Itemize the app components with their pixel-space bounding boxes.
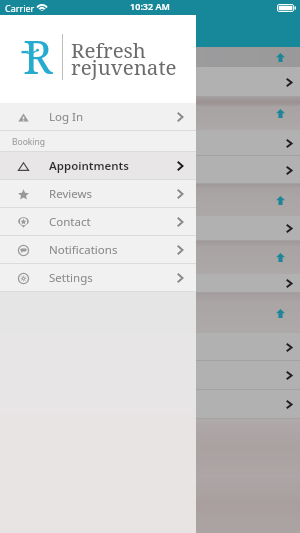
button[interactable]: Open item — [0, 216, 300, 241]
staticText: Reviews — [49, 186, 93, 202]
button[interactable]: Collapse section — [0, 97, 300, 130]
button[interactable]: Open item — [0, 361, 300, 390]
other: Collapse section — [276, 253, 285, 262]
staticText: Settings — [49, 270, 93, 286]
other: Open item — [286, 139, 292, 148]
button[interactable]: Open item — [0, 67, 300, 97]
other: Open item — [286, 279, 292, 288]
other: Open item — [286, 343, 292, 352]
button[interactable]: Open item — [0, 130, 300, 156]
staticText: Refresh — [71, 36, 146, 64]
staticText: Contact — [49, 214, 91, 230]
button[interactable]: Open item — [0, 333, 300, 361]
button[interactable]: Open item — [0, 156, 300, 184]
button[interactable]: Log In — [0, 103, 196, 131]
button[interactable]: Collapse section — [0, 241, 300, 274]
other: Collapse section — [276, 196, 285, 205]
button[interactable]: Settings — [0, 264, 196, 292]
other: Open item — [286, 224, 292, 233]
button[interactable]: Collapse section — [0, 184, 300, 216]
button[interactable]: Reviews — [0, 180, 196, 208]
other: Open item — [286, 166, 292, 175]
other: Collapse section — [276, 53, 285, 62]
other: Open item — [286, 400, 292, 409]
button[interactable]: Open item — [0, 274, 300, 293]
staticText: 10:32 AM — [0, 0, 300, 12]
button[interactable]: Collapse section — [0, 293, 300, 333]
staticText: R — [23, 26, 53, 87]
staticText: Notifications — [49, 242, 118, 258]
staticText: Booking — [12, 136, 46, 148]
other: Open item — [286, 371, 292, 380]
other: Open item — [286, 78, 292, 87]
staticText: Log In — [49, 109, 84, 125]
other: Collapse section — [276, 109, 285, 118]
button[interactable]: Notifications — [0, 236, 196, 264]
other: Collapse section — [276, 309, 285, 318]
button[interactable]: Contact — [0, 208, 196, 236]
button[interactable]: Appointments — [0, 152, 196, 180]
button[interactable]: Collapse section — [0, 47, 300, 67]
button[interactable]: Open item — [0, 390, 300, 419]
staticText: Appointments — [49, 158, 129, 174]
staticText: rejuvenate — [71, 53, 177, 81]
staticText: Carrier — [5, 2, 35, 14]
